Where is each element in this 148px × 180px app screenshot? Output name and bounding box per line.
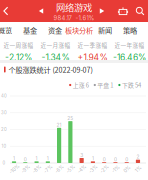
staticText: 1 [13,156,15,161]
staticText: 策略 [123,25,137,35]
button[interactable]: Back [0,0,12,22]
staticText: -16.46% [113,52,146,62]
staticText: 个股涨跌统计 (2022-09-07) [9,64,93,75]
staticText: 2 [136,154,139,160]
staticText: 概览 [0,25,12,35]
staticText: 下跌 54 [122,81,141,89]
button[interactable]: 板块分析 [63,22,95,38]
staticText: 近一月涨幅 [40,41,70,49]
button[interactable]: 概览 [0,22,21,38]
staticText: +1.94% [77,52,107,62]
staticText: 21 [57,122,62,128]
button[interactable]: 资金 [39,22,71,38]
staticText: 40 [1,93,7,99]
staticText: 近一年涨幅 [114,41,144,49]
staticText: 网络游戏 [56,0,92,14]
staticText: 20 [1,127,7,132]
staticText: 0 [2,160,5,166]
button[interactable]: Assistant [115,1,130,21]
staticText: 0 [114,156,117,162]
staticText: -10% [8,166,20,172]
staticText: 近一季涨幅 [77,41,107,49]
staticText: 平盘 1 [97,81,113,89]
staticText: 1 [92,156,94,161]
staticText: -2% [100,166,110,172]
staticText: 984.17 -1.61% [53,14,94,22]
staticText: 0% [123,166,131,172]
staticText: -3% [88,166,98,172]
staticText: -9% [21,166,31,172]
button[interactable]: 策略 [114,22,146,38]
staticText: 3 [80,152,83,158]
staticText: -7% [43,166,53,172]
staticText: -6% [55,166,65,172]
staticText: 板块分析 [65,25,93,35]
button[interactable]: 新闻 [89,22,121,38]
staticText: 1 [47,156,49,161]
staticText: 上涨 6 [73,81,89,89]
staticText: -8% [32,166,42,172]
staticText: -1.34% [41,52,69,62]
staticText: 30 [1,110,7,115]
staticText: -2.12% [5,52,32,62]
staticText: 0 [125,156,128,162]
staticText: 1% [135,166,142,172]
staticText: 近一周涨幅 [3,41,33,49]
button[interactable]: Search [132,1,147,21]
staticText: 10 [1,144,6,149]
staticText: 25 [67,115,73,121]
staticText: 资金 [48,25,62,35]
button[interactable]: Next sector [96,1,107,21]
staticText: 0 [103,156,106,162]
button[interactable]: 基金 [14,22,46,38]
staticText: 1 [36,156,38,161]
staticText: 基金 [23,25,37,35]
staticText: 0 [24,156,27,162]
button[interactable]: Previous sector [35,1,46,21]
staticText: -4% [77,166,87,172]
staticText: -5% [66,166,76,172]
staticText: -1% [111,166,120,172]
staticText: 新闻 [98,25,112,35]
